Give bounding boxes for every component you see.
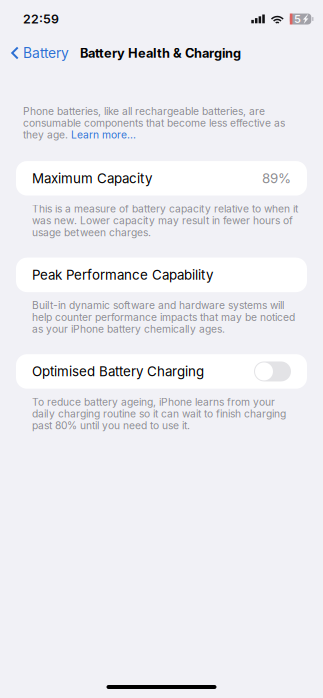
button[interactable]: Peak Performance Capability	[0, 258, 323, 292]
staticText: Phone batteries, like all rechargeable b…	[23, 105, 265, 117]
staticText: consumable components that become less e…	[23, 117, 285, 129]
staticText: Peak Performance Capability	[32, 267, 213, 283]
staticText: 89%	[262, 170, 291, 186]
staticText: 5	[294, 12, 301, 26]
button[interactable]: Maximum Capacity	[0, 161, 323, 196]
button[interactable]: Battery	[0, 39, 75, 67]
staticText: past 80% until you need to use it.	[32, 419, 190, 432]
staticText: usage between charges.	[32, 226, 151, 239]
button[interactable]: Learn more...	[71, 129, 136, 141]
staticText: Optimised Battery Charging	[32, 363, 204, 379]
staticText: Battery Health & Charging	[80, 45, 241, 61]
staticText: they age.	[23, 129, 71, 141]
staticText: Built-in dynamic software and hardware s…	[32, 299, 284, 311]
button[interactable]: Optimised Battery Charging	[0, 354, 323, 389]
staticText: help counter performance impacts that ma…	[32, 311, 295, 323]
staticText: Battery	[23, 45, 69, 61]
staticText: as your iPhone battery chemically ages.	[32, 323, 225, 335]
staticText: This is a measure of battery capacity re…	[32, 203, 298, 215]
staticText: was new. Lower capacity may result in fe…	[32, 214, 293, 227]
staticText: Maximum Capacity	[32, 170, 152, 186]
staticText: To reduce battery ageing, iPhone learns …	[32, 396, 275, 408]
staticText: daily charging routine so it can wait to…	[32, 407, 286, 420]
staticText: 22:59	[23, 11, 59, 26]
staticText: Learn more...	[71, 129, 136, 141]
